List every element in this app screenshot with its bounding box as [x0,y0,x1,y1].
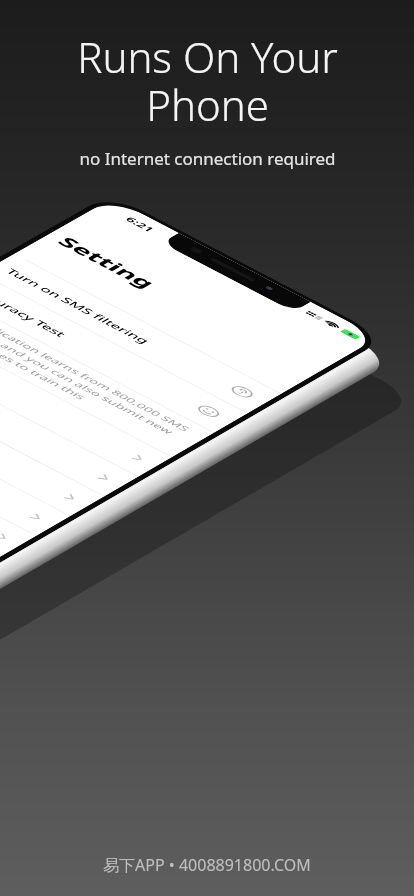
button[interactable]: Accuracy Test [0,273,248,433]
staticText: Turn on SMS filtering [3,266,153,346]
staticText: Setting [52,233,161,291]
staticText: This application learns from 800,000 SMS… [0,301,197,447]
staticText: 6:21 [123,215,157,234]
button[interactable]: About [0,375,70,536]
button[interactable]: Feedback [0,395,36,556]
button[interactable]: Sample [0,317,172,477]
button[interactable]: Turn on SMS filtering [0,254,281,413]
staticText: 易下APP • 4008891800.COM [103,854,311,876]
staticText: Runs On Your Phone [77,28,338,133]
staticText: Accuracy Test [0,286,70,339]
button[interactable]: Blacklist [0,355,104,516]
button[interactable]: Whitelist [0,336,138,496]
staticText: no Internet connection required [79,147,336,170]
